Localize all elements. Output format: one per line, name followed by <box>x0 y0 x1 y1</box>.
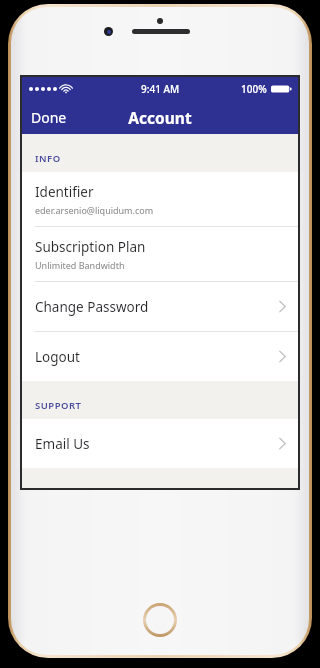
button[interactable]: Subscription Plan <box>22 227 298 281</box>
button[interactable]: Done <box>22 101 76 134</box>
button[interactable]: Logout <box>22 332 298 381</box>
staticText: Account <box>128 107 192 128</box>
staticText: Done <box>31 108 67 127</box>
staticText: eder.arsenio@liquidum.com <box>35 204 154 216</box>
staticText: SUPPORT <box>35 399 82 412</box>
staticText: Change Password <box>35 298 279 316</box>
staticText: Unlimited Bandwidth <box>35 259 125 271</box>
button[interactable]: Email Us <box>22 419 298 468</box>
staticText: 100% <box>241 82 267 96</box>
button[interactable]: Change Password <box>22 282 298 331</box>
staticText: INFO <box>35 152 61 165</box>
other: Home <box>143 603 177 637</box>
staticText: Subscription Plan <box>35 238 146 256</box>
staticText: Email Us <box>35 435 279 453</box>
staticText: 9:41 AM <box>141 82 180 96</box>
staticText: Logout <box>35 348 279 366</box>
button[interactable]: Identifier <box>22 172 298 226</box>
staticText: Identifier <box>35 183 94 201</box>
